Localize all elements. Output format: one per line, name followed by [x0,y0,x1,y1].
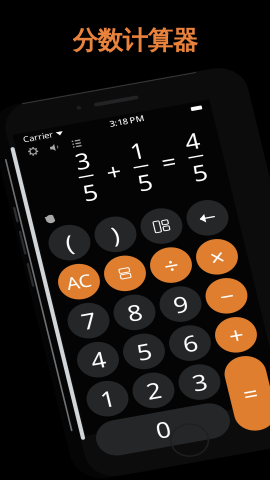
button[interactable]: + [152,392,193,433]
button[interactable]: 7 [14,346,55,387]
staticText: + [166,396,180,429]
button[interactable]: 9 [106,346,147,387]
staticText: 9 [120,350,134,383]
staticText: ) [77,258,85,291]
button[interactable]: 5 [60,392,101,433]
staticText: AC [22,307,47,334]
button[interactable]: 2 [60,438,101,479]
staticText: Carrier [14,142,44,155]
button[interactable]: 3 [106,438,147,479]
button[interactable]: 6 [106,392,147,433]
staticText: = [142,186,156,220]
button[interactable]: × [152,300,193,341]
button[interactable] [106,254,147,295]
button[interactable] [60,300,101,341]
button[interactable]: = [152,438,193,480]
staticText: 2 [74,442,88,475]
staticText: 3:18 PM [101,142,136,155]
button[interactable]: ÷ [106,300,147,341]
button[interactable]: ) [60,254,101,295]
staticText: 3 [120,442,134,475]
button[interactable]: 8 [60,346,101,387]
button[interactable]: − [152,346,193,387]
staticText: 5 [169,205,183,238]
staticText: 5 [114,205,128,238]
button[interactable]: AC [14,300,55,341]
staticText: + [87,186,101,220]
staticText: ÷ [120,304,134,337]
staticText: × [166,304,180,337]
button[interactable]: ( [14,254,55,295]
staticText: 分数计算器 [72,25,197,56]
staticText: ( [31,258,39,291]
staticText: 5 [74,396,88,429]
button[interactable] [152,254,193,295]
button[interactable]: History [14,236,30,252]
staticText: 8 [74,350,88,383]
button[interactable]: Settings [14,157,28,171]
staticText: 5 [59,205,73,238]
staticText: − [166,350,180,383]
staticText: 6 [120,396,134,429]
staticText: = [166,465,180,480]
staticText: 1 [114,167,128,201]
